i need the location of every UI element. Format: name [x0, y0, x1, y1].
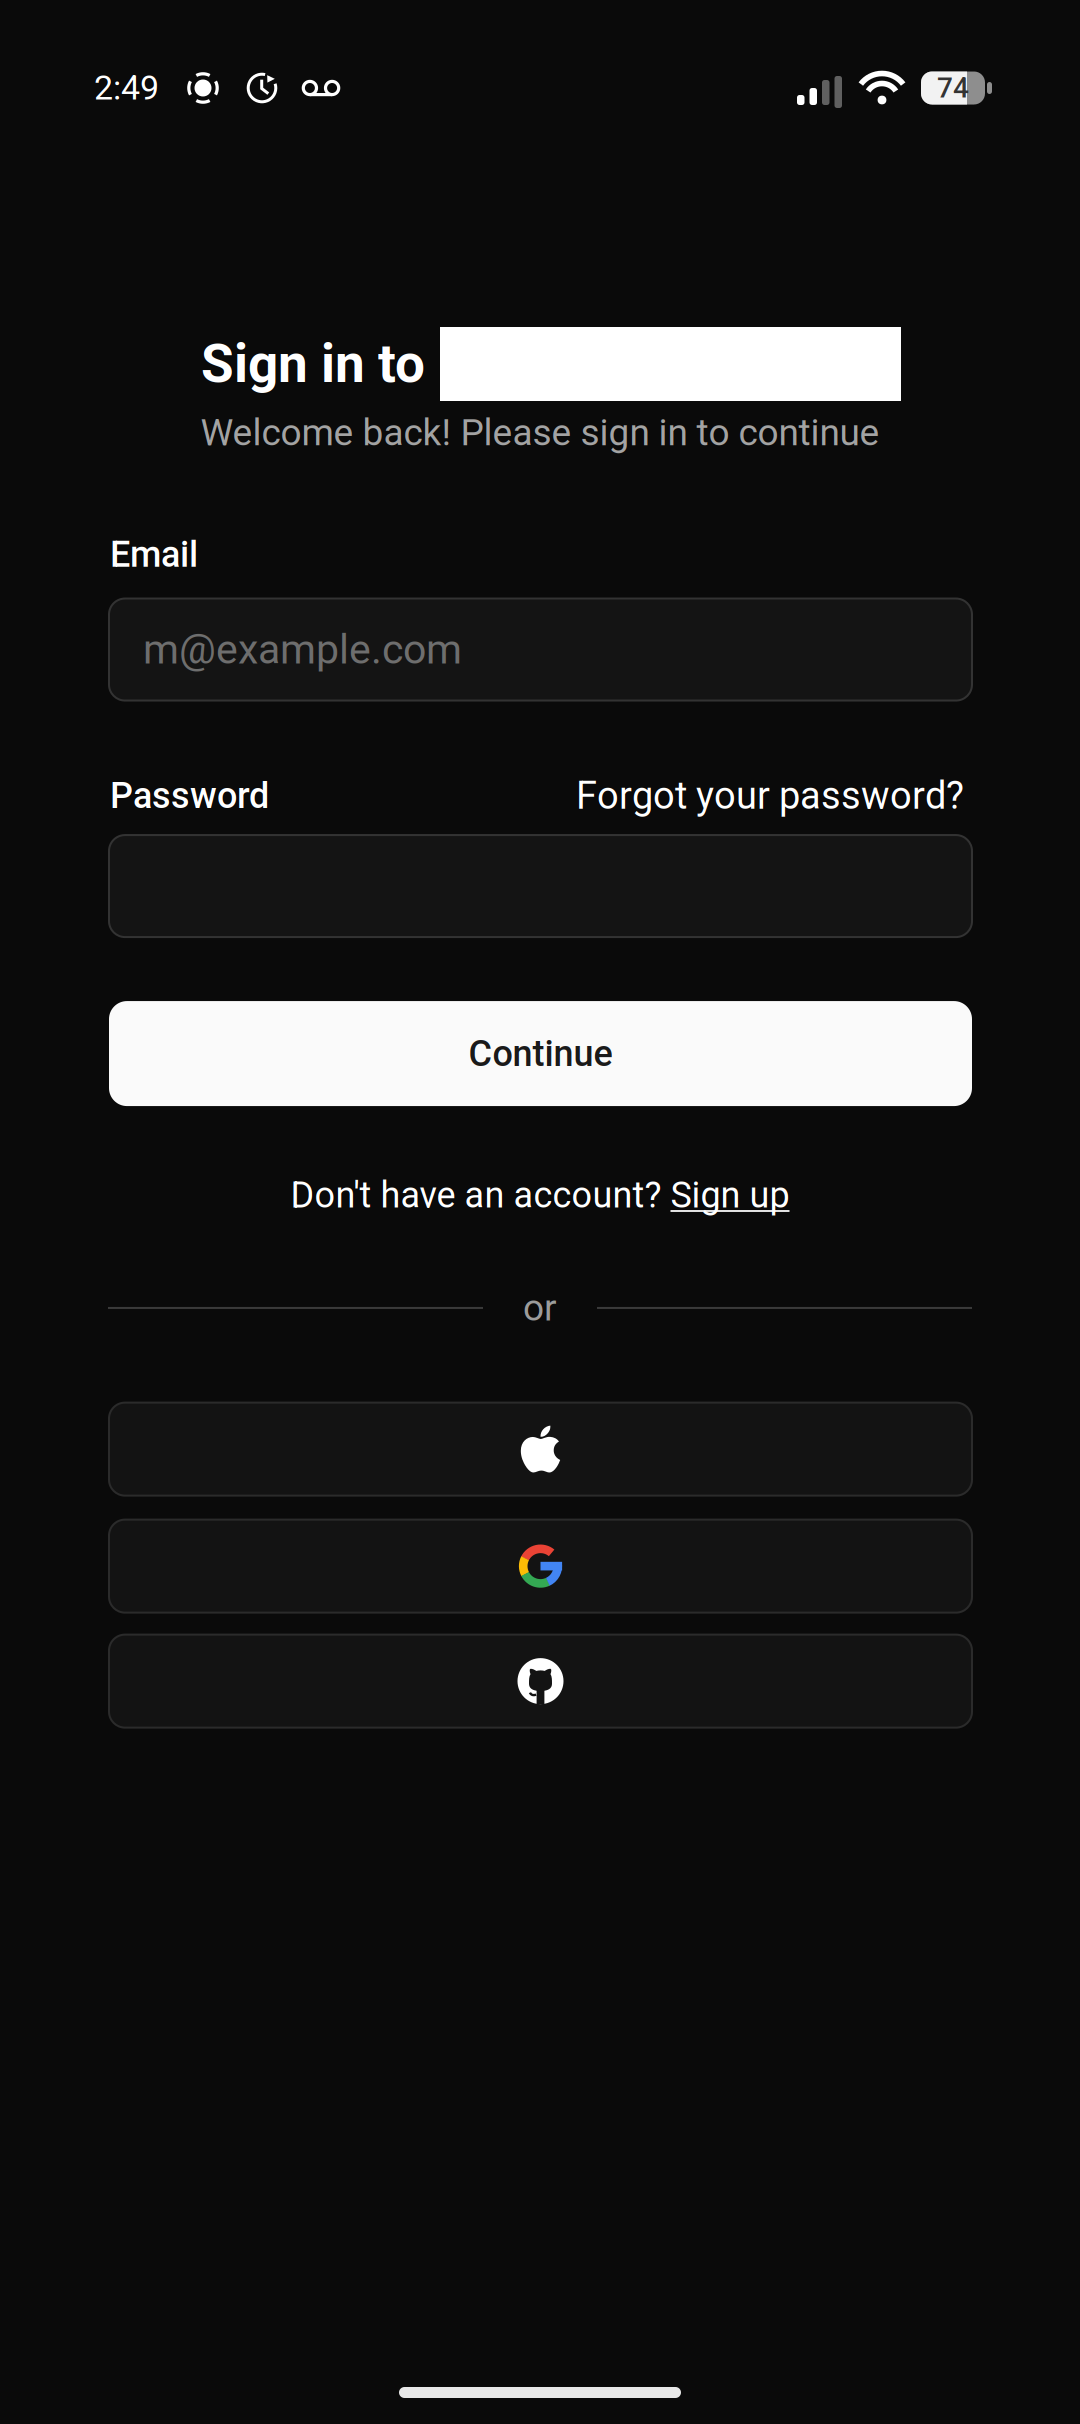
button[interactable]: Continue	[0, 1001, 1080, 1106]
button[interactable]: m@example.com	[0, 598, 1080, 700]
staticText: Continue	[468, 1032, 612, 1075]
button[interactable]	[0, 1520, 1080, 1613]
staticText: 74	[937, 72, 969, 104]
button[interactable]	[0, 1635, 1080, 1728]
button[interactable]	[0, 1403, 1080, 1496]
staticText: Sign in to	[201, 333, 425, 395]
staticText: 2:49	[94, 68, 159, 108]
staticText: Email	[110, 533, 198, 576]
staticText: Welcome back! Please sign in to continue	[200, 411, 879, 454]
staticText: Forgot your password?	[576, 773, 964, 818]
staticText: m@example.com	[143, 625, 462, 673]
staticText: Don't have an account? Sign up	[290, 1174, 789, 1216]
staticText: or	[523, 1286, 557, 1330]
button[interactable]: Forgot your password?	[576, 773, 964, 818]
button[interactable]: Don't have an account? Sign up	[290, 1174, 789, 1216]
button[interactable]	[0, 835, 1080, 937]
staticText: Password	[110, 775, 269, 817]
